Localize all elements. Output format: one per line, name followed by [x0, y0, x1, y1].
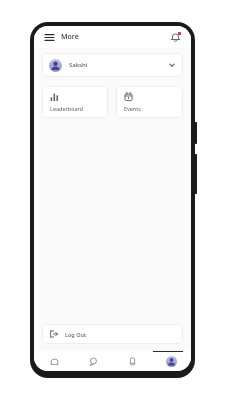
staticText: Leaderboard	[50, 105, 84, 112]
staticText: More	[61, 32, 79, 42]
button[interactable]: Chat	[74, 351, 113, 371]
button[interactable]: Events	[116, 86, 183, 118]
button[interactable]: Profile	[152, 351, 191, 371]
staticText: Log Out	[65, 331, 87, 338]
button[interactable]: Sakshi	[42, 53, 183, 77]
button[interactable]: Home	[34, 351, 74, 371]
button[interactable]: Open navigation menu	[42, 30, 56, 44]
staticText: Sakshi	[69, 61, 88, 69]
staticText: Events	[124, 105, 141, 112]
button[interactable]: Notifications	[167, 29, 183, 45]
button[interactable]: Leaderboard	[42, 86, 108, 118]
button[interactable]: Log Out	[42, 324, 183, 344]
button[interactable]: Library	[113, 351, 152, 371]
